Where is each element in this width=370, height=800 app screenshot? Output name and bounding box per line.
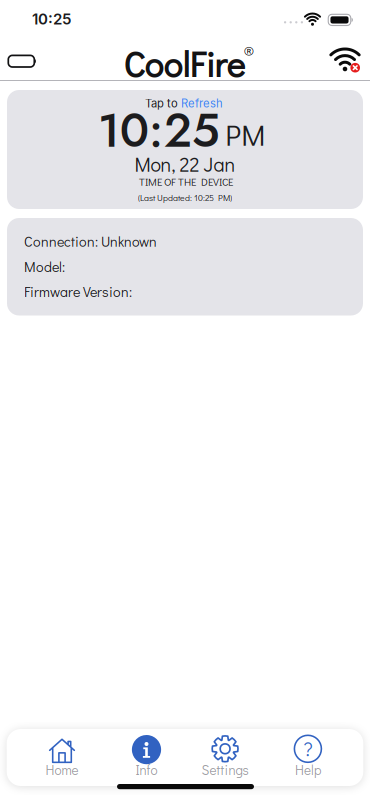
staticText: Connection: Unknown [24,232,157,250]
staticText: TIME OF THE DEVICE [139,175,233,189]
button[interactable]: Wi-Fi status [326,47,364,74]
staticText: Mon, 22 Jan [134,151,235,177]
staticText: CoolFire [123,40,244,86]
staticText: Settings [202,761,249,779]
staticText: Tap to [145,97,178,110]
staticText: ? [303,735,312,762]
staticText: 10:25 [98,97,220,164]
button[interactable]: ? [268,729,348,786]
button[interactable]: Tap to [7,90,363,209]
staticText: Info [135,761,157,779]
staticText: Firmware Version: [24,282,132,301]
staticText: Refresh [181,97,223,110]
button[interactable]: Info [106,729,186,786]
staticText: Model: [24,257,65,276]
staticText: 10:25 [32,10,71,28]
button[interactable]: Settings [185,729,265,786]
staticText: Home [45,761,78,779]
staticText: PM [225,115,265,154]
button[interactable]: Battery status [7,54,35,67]
button[interactable]: Home [22,729,102,786]
staticText: (Last Updated: 10:25 PM) [138,192,232,203]
staticText: Help [295,761,321,779]
staticText: ® [244,40,254,60]
